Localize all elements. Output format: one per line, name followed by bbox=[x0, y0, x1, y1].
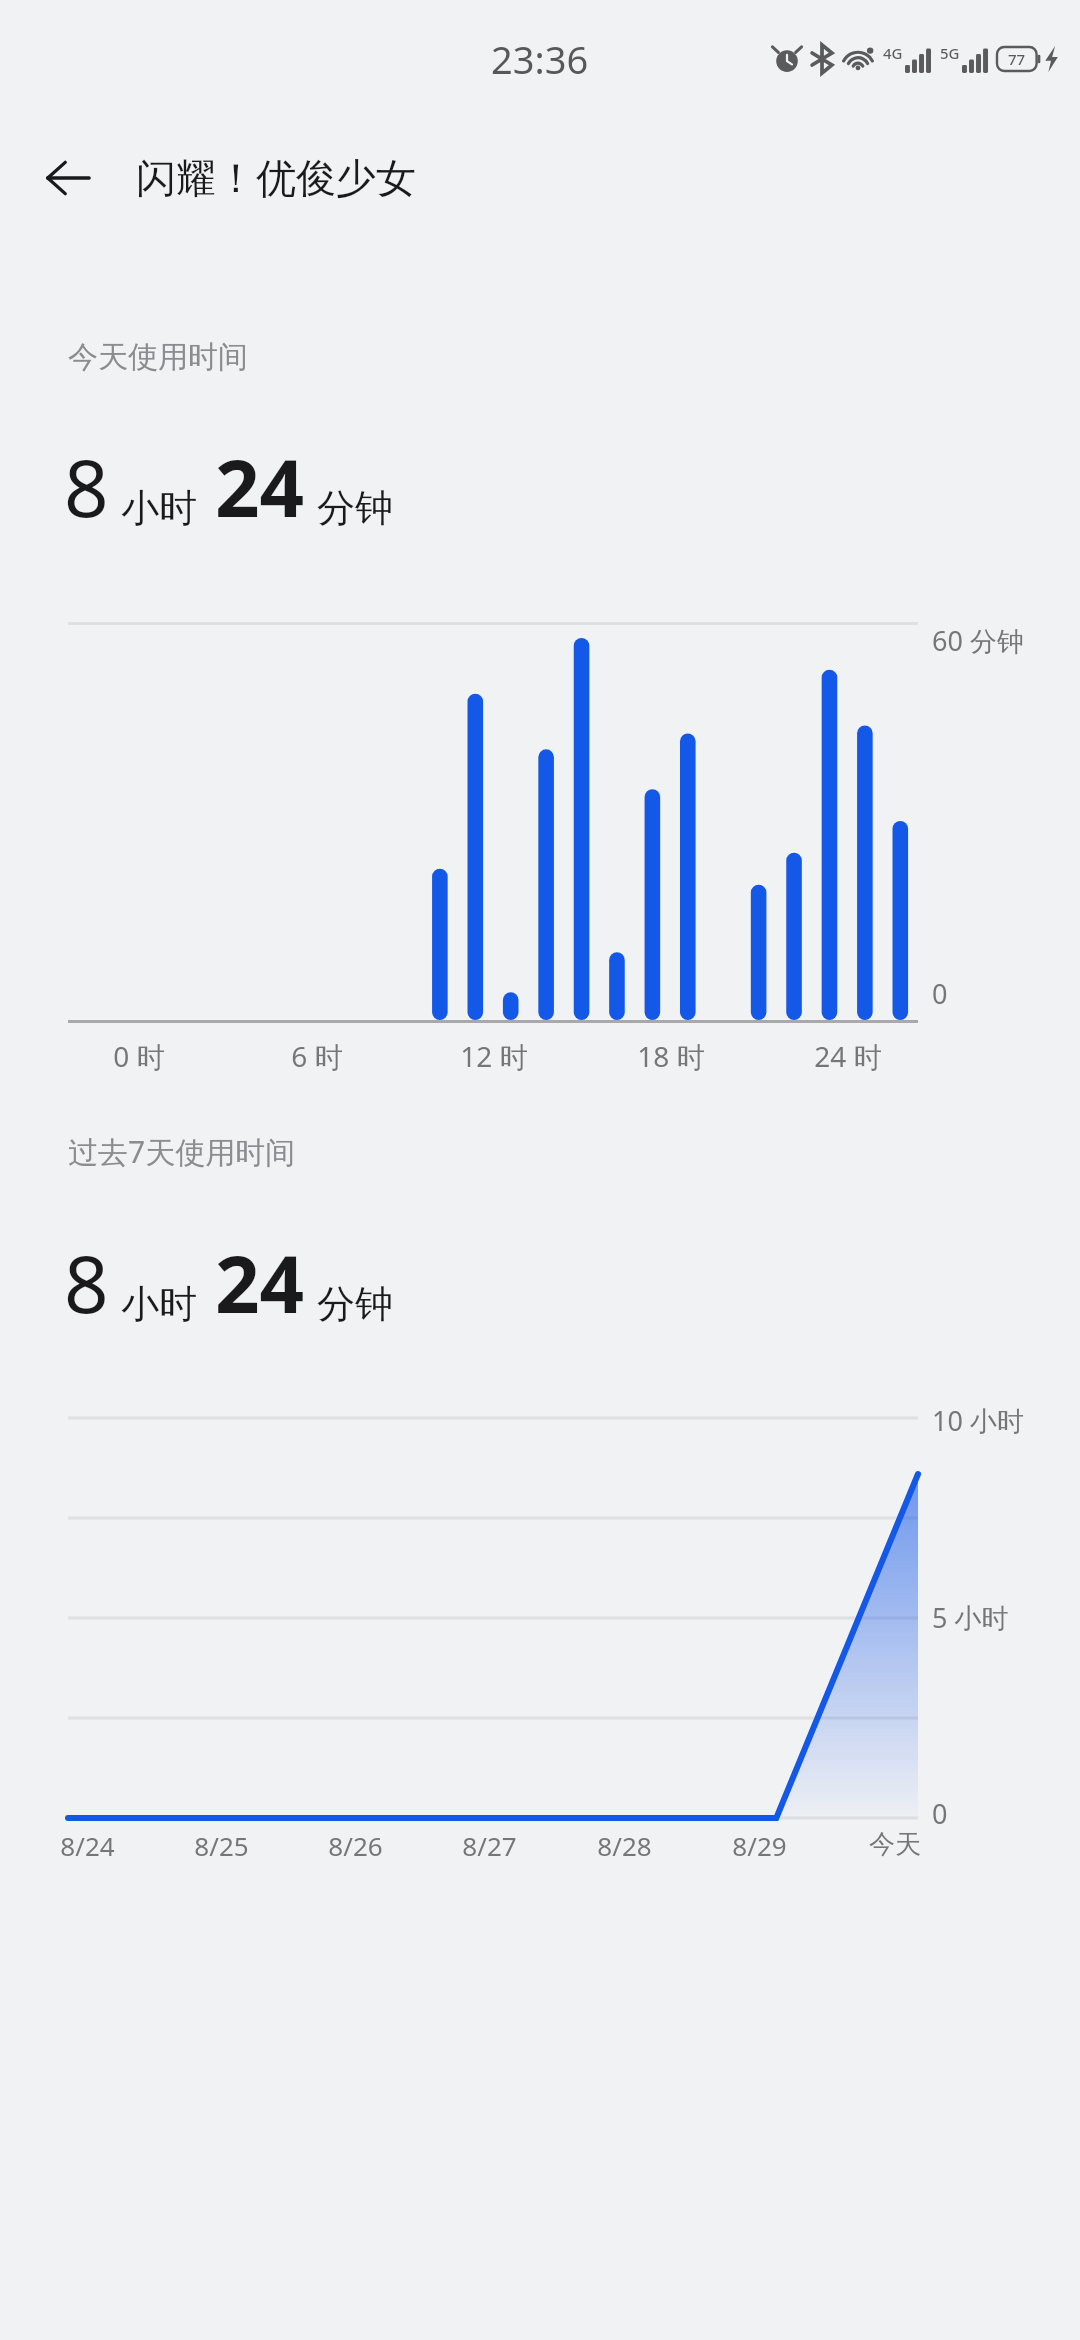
staticText: 0 bbox=[932, 975, 948, 1012]
staticText: 4G bbox=[883, 43, 903, 63]
staticText: 8/25 bbox=[194, 1828, 249, 1863]
staticText: 分钟 bbox=[317, 484, 393, 532]
button[interactable]: 返回 bbox=[14, 124, 122, 232]
staticText: 60 分钟 bbox=[932, 622, 1024, 659]
staticText: 8/29 bbox=[732, 1828, 787, 1863]
staticText: 24 bbox=[215, 434, 305, 540]
staticText: 24 时 bbox=[814, 1037, 882, 1075]
staticText: 分钟 bbox=[317, 1280, 393, 1328]
staticText: 5G bbox=[940, 43, 960, 63]
staticText: 今天 bbox=[869, 1828, 921, 1861]
staticText: 8/24 bbox=[60, 1828, 115, 1863]
staticText: 12 时 bbox=[460, 1037, 528, 1075]
staticText: 6 时 bbox=[291, 1037, 343, 1075]
staticText: 8 bbox=[64, 1230, 109, 1336]
staticText: 0 时 bbox=[113, 1037, 165, 1075]
staticText: 77 bbox=[1008, 49, 1026, 69]
staticText: 24 bbox=[215, 1230, 305, 1336]
staticText: 10 小时 bbox=[932, 1402, 1024, 1439]
staticText: 8/26 bbox=[328, 1828, 383, 1863]
staticText: 8/28 bbox=[597, 1828, 652, 1863]
staticText: 闪耀！优俊少女 bbox=[136, 153, 416, 203]
staticText: 小时 bbox=[121, 484, 197, 532]
staticText: 18 时 bbox=[637, 1037, 705, 1075]
staticText: 小时 bbox=[121, 1280, 197, 1328]
staticText: 过去7天使用时间 bbox=[68, 1131, 296, 1172]
staticText: 8/27 bbox=[462, 1828, 517, 1863]
staticText: 0 bbox=[932, 1795, 948, 1832]
staticText: 今天使用时间 bbox=[68, 338, 248, 376]
staticText: 8 bbox=[64, 434, 109, 540]
staticText: 23:36 bbox=[491, 33, 589, 85]
staticText: 5 小时 bbox=[932, 1599, 1009, 1636]
